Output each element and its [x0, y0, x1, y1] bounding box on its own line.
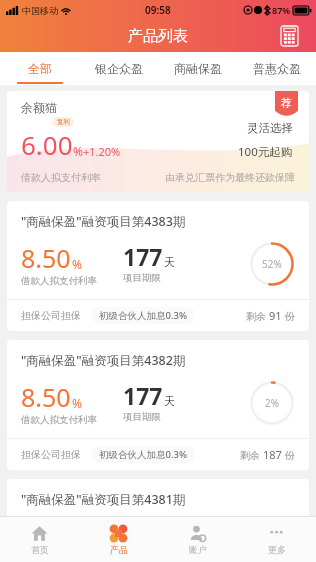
staticText: 担保公司担保	[21, 309, 81, 322]
staticText: %	[72, 395, 82, 411]
staticText: 份	[282, 309, 295, 323]
staticText: 份	[282, 448, 295, 462]
staticText: 8.50	[21, 380, 71, 414]
staticText: 余额猫	[21, 100, 57, 115]
staticText: 账户	[189, 544, 207, 555]
staticText: %	[73, 143, 83, 159]
button[interactable]: 产品	[79, 517, 158, 562]
staticText: 天	[164, 255, 175, 269]
staticText: 177	[123, 241, 163, 272]
staticText: 借款人拟支付利率	[21, 171, 101, 184]
staticText: 借款人拟支付利率	[21, 275, 97, 287]
staticText: 项目期限	[123, 411, 161, 423]
staticText: +1.20%	[83, 144, 121, 159]
staticText: 初级合伙人加息0.3%	[99, 309, 188, 322]
staticText: 商融保盈	[174, 61, 222, 76]
staticText: 首页	[31, 544, 49, 555]
button[interactable]: 全部	[0, 52, 79, 85]
staticText: "商融保盈"融资项目第4383期	[21, 213, 186, 230]
staticText: 产品	[110, 544, 128, 555]
staticText: 银企众盈	[95, 61, 143, 76]
button[interactable]: Calculator	[275, 22, 303, 50]
staticText: 担保公司担保	[21, 448, 81, 461]
staticText: 由承兑汇票作为最终还款保障	[165, 171, 295, 184]
staticText: 普惠众盈	[253, 61, 301, 76]
button[interactable]: 账户	[158, 517, 237, 562]
button[interactable]: 商融保盈	[158, 52, 237, 85]
staticText: 剩余	[246, 309, 269, 323]
staticText: 复利	[57, 118, 70, 126]
button[interactable]: "商融保盈"融资项目第4382期	[7, 340, 309, 470]
staticText: %	[72, 256, 82, 272]
staticText: 91	[269, 308, 282, 323]
button[interactable]: "商融保盈"融资项目第4383期	[7, 201, 309, 331]
button[interactable]: 普惠众盈	[237, 52, 316, 85]
staticText: 项目期限	[123, 272, 161, 284]
staticText: 2%	[265, 396, 280, 410]
staticText: 荐	[281, 96, 292, 110]
staticText: "商融保盈"融资项目第4382期	[21, 352, 186, 369]
staticText: 100元起购	[238, 144, 293, 160]
staticText: 8.50	[21, 241, 71, 275]
staticText: 初级合伙人加息0.3%	[99, 448, 188, 461]
staticText: 中国移动	[22, 5, 58, 16]
button[interactable]: 更多	[237, 517, 316, 562]
staticText: 更多	[268, 544, 286, 555]
staticText: 灵活选择	[247, 121, 293, 135]
button[interactable]: 首页	[0, 517, 79, 562]
button[interactable]: 银企众盈	[79, 52, 158, 85]
staticText: 全部	[28, 61, 52, 76]
staticText: 剩余	[240, 448, 263, 462]
staticText: 产品列表	[128, 27, 188, 46]
staticText: 09:58	[145, 3, 171, 17]
staticText: 52%	[262, 257, 282, 271]
staticText: 天	[164, 394, 175, 408]
button[interactable]: "商融保盈"融资项目第4381期	[7, 479, 309, 516]
button[interactable]: 余额猫	[7, 91, 309, 192]
staticText: 借款人拟支付利率	[21, 414, 97, 426]
staticText: 187	[263, 447, 282, 462]
staticText: "商融保盈"融资项目第4381期	[21, 491, 186, 508]
staticText: 177	[123, 380, 163, 411]
staticText: 87%	[272, 4, 291, 16]
staticText: 6.00	[21, 127, 73, 162]
